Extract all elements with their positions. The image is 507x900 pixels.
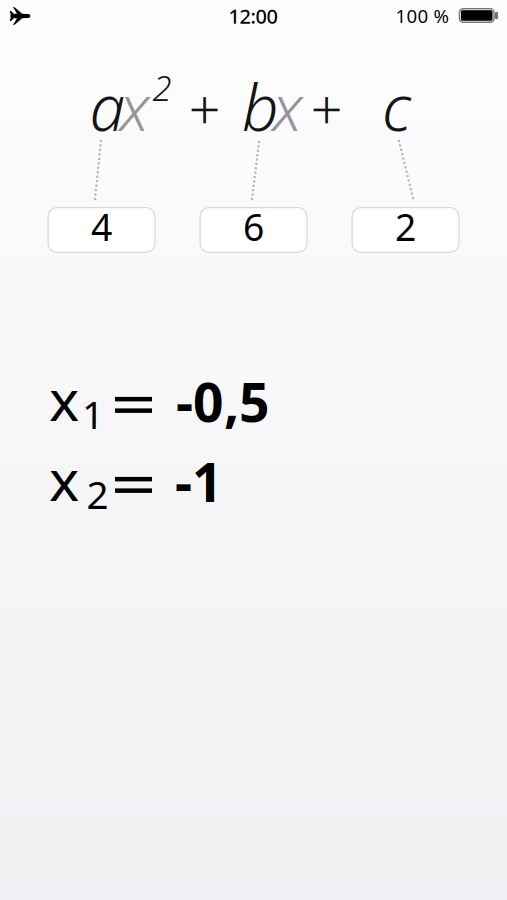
- staticText: x: [49, 361, 79, 437]
- staticText: +: [309, 70, 341, 145]
- staticText: x: [272, 64, 302, 149]
- staticText: x: [49, 441, 79, 517]
- staticText: c: [382, 64, 411, 149]
- button[interactable]: 6: [199, 207, 307, 253]
- staticText: 6: [243, 202, 264, 251]
- button[interactable]: 4: [47, 207, 155, 253]
- staticText: 4: [91, 202, 112, 251]
- staticText: 100 %: [395, 3, 449, 28]
- staticText: 2: [152, 65, 171, 111]
- staticText: b: [242, 64, 279, 149]
- staticText: 2: [86, 468, 108, 520]
- staticText: 2: [395, 202, 416, 251]
- button[interactable]: 2: [351, 207, 459, 253]
- staticText: x: [119, 64, 149, 149]
- staticText: a: [89, 64, 125, 149]
- staticText: 1: [82, 388, 104, 440]
- staticText: -0,5: [176, 366, 270, 437]
- staticText: 12:00: [228, 3, 277, 29]
- staticText: +: [187, 70, 219, 145]
- staticText: -1: [175, 446, 223, 517]
